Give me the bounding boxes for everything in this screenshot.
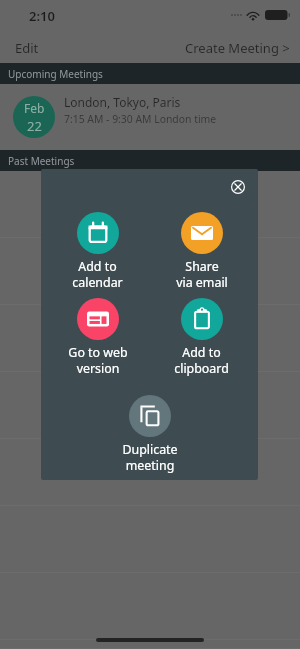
staticText: 2:10 [29, 7, 55, 25]
staticText: Share via email [176, 258, 228, 291]
button[interactable] [0, 305, 300, 372]
staticText: Duplicate meeting [122, 441, 178, 474]
button[interactable]: Feb [0, 84, 300, 150]
button[interactable] [0, 640, 300, 649]
staticText: London, Tokyo, Paris [64, 94, 181, 110]
button[interactable] [0, 573, 300, 640]
staticText: Feb [24, 100, 45, 116]
staticText: Add to clipboard [174, 344, 229, 377]
staticText: Go to web version [68, 344, 128, 377]
staticText: Upcoming Meetings [8, 67, 103, 81]
staticText: Create Meeting > [185, 39, 290, 57]
button[interactable]: Go to web version [44, 298, 151, 377]
button[interactable]: Add to clipboard [148, 298, 255, 377]
button[interactable]: Edit [0, 33, 54, 63]
button[interactable]: Close [228, 177, 248, 197]
staticText: 22 [27, 117, 42, 135]
button[interactable]: Create Meeting > [175, 33, 300, 63]
staticText: Add to calendar [72, 258, 123, 291]
button[interactable] [0, 238, 300, 305]
button[interactable] [0, 439, 300, 506]
button[interactable] [0, 171, 300, 238]
staticText: Past Meetings [8, 154, 75, 168]
button[interactable] [0, 372, 300, 439]
button[interactable]: Duplicate meeting [96, 395, 203, 474]
button[interactable]: Add to calendar [44, 212, 151, 291]
button[interactable]: Share via email [148, 212, 255, 291]
staticText: 7:15 AM - 9:30 AM London time [64, 112, 217, 126]
staticText: Edit [15, 39, 39, 57]
